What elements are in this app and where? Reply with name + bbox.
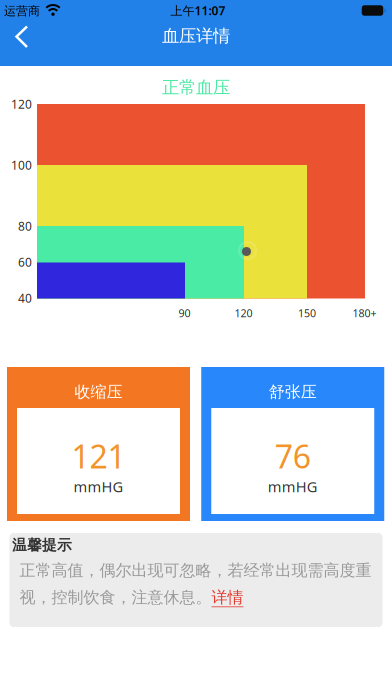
staticText: 40 bbox=[18, 290, 32, 306]
staticText: 运营商 bbox=[4, 4, 40, 18]
staticText: 121 bbox=[71, 435, 125, 477]
staticText: mmHG bbox=[73, 477, 123, 496]
staticText: 90 bbox=[178, 306, 190, 320]
staticText: 详情 bbox=[211, 588, 243, 607]
staticText: 血压详情 bbox=[162, 25, 230, 47]
staticText: 180+ bbox=[352, 306, 376, 320]
staticText: 150 bbox=[298, 306, 316, 320]
staticText: 80 bbox=[18, 218, 32, 234]
staticText: 76 bbox=[275, 435, 311, 477]
button[interactable]: 详情 bbox=[211, 588, 243, 607]
staticText: 视，控制饮食，注意休息。 bbox=[19, 588, 211, 607]
button[interactable] bbox=[0, 14, 44, 58]
staticText: mmHG bbox=[268, 477, 318, 496]
staticText: 上午11:07 bbox=[170, 2, 225, 18]
staticText: 120 bbox=[234, 306, 252, 320]
staticText: 正常高值，偶尔出现可忽略，若经常出现需高度重 bbox=[19, 561, 371, 580]
staticText: 温馨提示 bbox=[12, 536, 72, 554]
staticText: 60 bbox=[18, 254, 32, 270]
staticText: 正常血压 bbox=[162, 77, 230, 98]
staticText: 舒张压 bbox=[269, 382, 317, 402]
staticText: 120 bbox=[11, 96, 32, 112]
staticText: 收缩压 bbox=[74, 382, 122, 402]
staticText: 100 bbox=[11, 157, 32, 173]
